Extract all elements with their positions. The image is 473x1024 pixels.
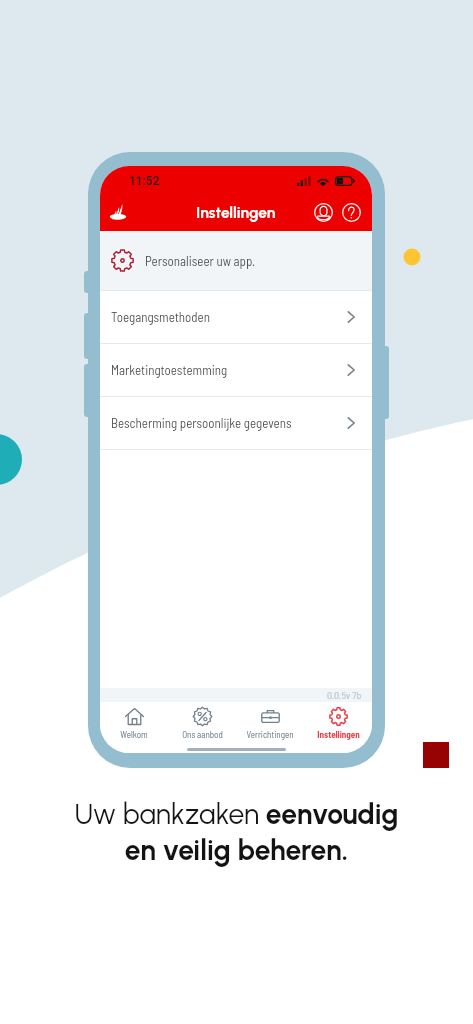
staticText: Toegangsmethoden — [111, 309, 210, 325]
button[interactable]: Welkom — [100, 702, 168, 740]
staticText: Verrichtingen — [246, 729, 294, 740]
button[interactable]: Profile — [310, 199, 336, 225]
button[interactable]: Bescherming persoonlijke gegevens — [100, 397, 372, 449]
staticText: 11:52 — [129, 174, 160, 188]
staticText: Instellingen — [196, 203, 276, 222]
staticText: Bescherming persoonlijke gegevens — [111, 415, 292, 431]
button[interactable]: Toegangsmethoden — [100, 291, 372, 343]
staticText: Instellingen — [317, 729, 360, 740]
staticText: 0.0.5v 7b — [327, 689, 362, 701]
staticText: Ons aanbod — [182, 729, 223, 740]
staticText: Uw bankzaken eenvoudig en veilig beheren… — [0, 797, 473, 867]
staticText: Personaliseer uw app. — [145, 253, 256, 269]
button[interactable]: Personaliseer uw app. — [100, 231, 372, 290]
staticText: Welkom — [120, 729, 148, 740]
button[interactable]: Ons aanbod — [168, 702, 236, 740]
button[interactable]: Marketingtoestemming — [100, 344, 372, 396]
button[interactable]: Help — [338, 199, 364, 225]
button[interactable]: Santander home — [104, 198, 132, 226]
button[interactable]: Verrichtingen — [236, 702, 304, 740]
button[interactable]: Instellingen — [304, 702, 372, 740]
staticText: Marketingtoestemming — [111, 362, 228, 378]
